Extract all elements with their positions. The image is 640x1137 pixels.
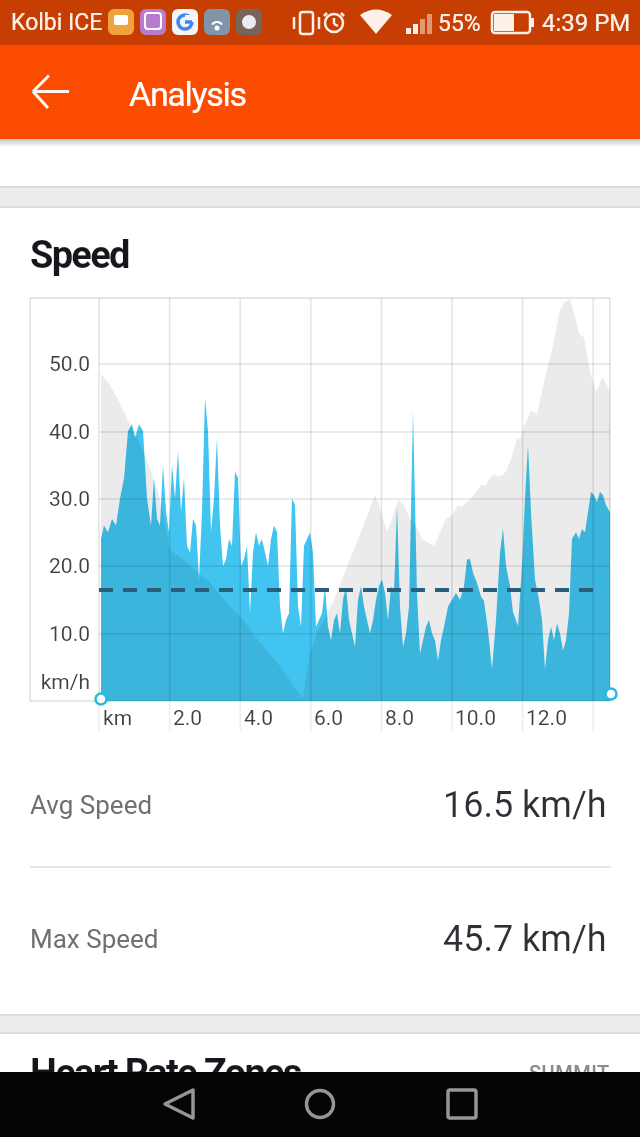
button[interactable] [292,1076,348,1132]
staticText: SUMMIT [529,1061,610,1084]
staticText: 55% [438,10,481,37]
staticText: 45.7 km/h [443,918,607,960]
staticText: 50.0 [49,352,90,377]
staticText: 4:39 PM [542,9,631,37]
button[interactable]: Max Speed [0,884,640,994]
staticText: Avg Speed [30,790,153,820]
staticText: 10.0 [49,622,90,647]
staticText: 12.0 [526,706,567,731]
staticText: Kolbi ICE [11,9,103,36]
staticText: Max Speed [30,924,159,954]
staticText: km/h [40,670,90,695]
staticText: Speed [30,233,129,278]
button[interactable] [151,1076,207,1132]
staticText: Analysis [129,74,246,114]
button[interactable] [19,60,83,124]
staticText: 20.0 [49,554,90,579]
staticText: 6.0 [314,706,344,731]
staticText: 30.0 [49,487,90,512]
staticText: 16.5 km/h [443,784,607,826]
staticText: 8.0 [385,706,415,731]
button[interactable]: Avg Speed [0,750,640,860]
staticText: 40.0 [49,420,90,445]
staticText: km [103,706,133,731]
button[interactable]: SUMMIT [410,1061,610,1101]
staticText: 4.0 [244,706,274,731]
staticText: Heart Rate Zones [30,1051,301,1096]
staticText: 2.0 [173,706,203,731]
button[interactable] [434,1076,490,1132]
staticText: 10.0 [455,706,496,731]
